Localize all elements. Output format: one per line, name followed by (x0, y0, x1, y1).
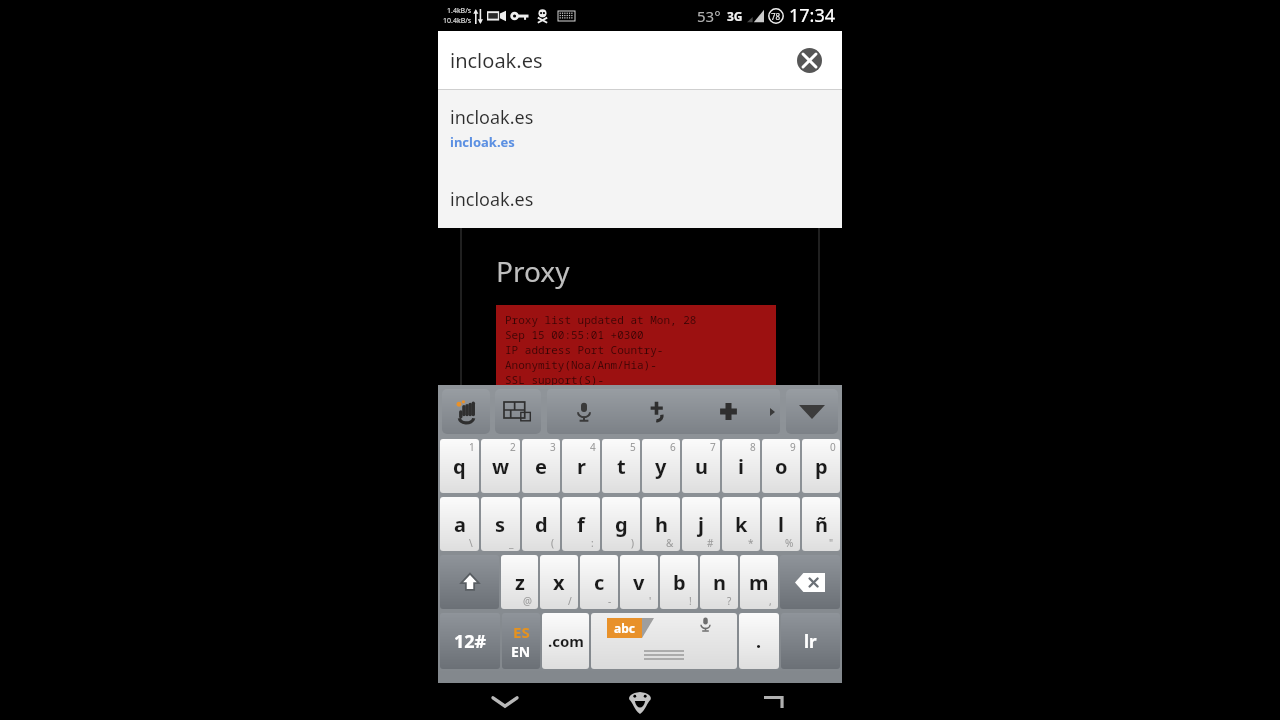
button[interactable]: ñ (802, 497, 840, 551)
button[interactable]: More options (764, 389, 780, 434)
staticText: 10.4kB/s (443, 16, 472, 26)
button[interactable]: d (522, 497, 560, 551)
button[interactable]: . (739, 613, 779, 669)
staticText: @ (523, 594, 532, 608)
staticText: 6 (670, 440, 676, 454)
button[interactable]: r (562, 439, 600, 493)
staticText: v (633, 569, 645, 596)
staticText: 9 (790, 440, 796, 454)
button[interactable]: Twitter (620, 389, 692, 434)
staticText: 3G (727, 8, 743, 24)
staticText: h (655, 511, 668, 538)
button[interactable]: Home (572, 683, 707, 720)
button[interactable]: incloak.es (438, 90, 842, 157)
staticText: incloak.es (450, 47, 791, 74)
button[interactable]: Back (438, 683, 572, 720)
staticText: _ (509, 536, 514, 550)
button[interactable]: Handwriting input (442, 389, 490, 434)
button[interactable]: l (762, 497, 800, 551)
staticText: m (749, 569, 769, 596)
button[interactable]: u (682, 439, 720, 493)
staticText: u (695, 453, 708, 480)
button[interactable]: h (642, 497, 680, 551)
staticText: - (608, 594, 612, 608)
staticText: 53° (697, 6, 721, 26)
staticText: # (707, 536, 714, 550)
staticText: 2 (510, 440, 516, 454)
staticText: ! (689, 594, 692, 608)
button[interactable]: Keyboard layout (495, 389, 541, 434)
button[interactable]: g (602, 497, 640, 551)
button[interactable]: w (481, 439, 520, 493)
button[interactable]: z (501, 555, 538, 609)
staticText: 5 (630, 440, 636, 454)
button[interactable]: j (682, 497, 720, 551)
staticText: c (594, 569, 605, 596)
staticText: 3 (550, 440, 556, 454)
staticText: 78 (771, 11, 781, 22)
staticText: incloak.es (450, 133, 515, 151)
button[interactable]: o (762, 439, 800, 493)
button[interactable]: q (440, 439, 479, 493)
button[interactable]: Hide keyboard (786, 389, 838, 434)
button[interactable]: c (580, 555, 618, 609)
staticText: IP address Port Country- (505, 342, 664, 357)
button[interactable]: a (440, 497, 479, 551)
staticText: f (577, 511, 585, 538)
button[interactable]: Recent apps (707, 683, 842, 720)
staticText: o (775, 453, 788, 480)
button[interactable]: Shift (440, 555, 499, 609)
staticText: 8 (750, 440, 756, 454)
staticText: d (535, 511, 548, 538)
staticText: 4 (590, 440, 596, 454)
button[interactable]: Backspace (780, 555, 840, 609)
button[interactable]: Clear query (791, 42, 827, 78)
staticText: r (577, 453, 586, 480)
button[interactable]: e (522, 439, 560, 493)
button[interactable]: b (660, 555, 698, 609)
button[interactable]: i (722, 439, 760, 493)
staticText: & (666, 536, 674, 550)
button[interactable]: Space (591, 613, 737, 669)
button[interactable]: 12# (440, 613, 500, 669)
staticText: .com (548, 631, 584, 651)
staticText: * (748, 536, 754, 550)
button[interactable]: f (562, 497, 600, 551)
staticText: ( (551, 536, 554, 550)
button[interactable]: .com (542, 613, 589, 669)
staticText: b (673, 569, 686, 596)
staticText: / (568, 594, 572, 608)
staticText: i (738, 453, 744, 480)
button[interactable]: x (540, 555, 578, 609)
button[interactable]: k (722, 497, 760, 551)
staticText: ' (649, 594, 652, 608)
staticText: incloak.es (450, 105, 534, 130)
staticText: ) (631, 536, 634, 550)
staticText: p (815, 453, 828, 480)
staticText: s (495, 511, 506, 538)
button[interactable]: v (620, 555, 658, 609)
staticText: 0 (830, 440, 836, 454)
staticText: ? (727, 594, 732, 608)
button[interactable]: Voice input (547, 389, 620, 434)
staticText: Proxy list updated at Mon, 28 (505, 312, 697, 327)
button[interactable]: Switch language (502, 613, 540, 669)
button[interactable]: incloak.es (438, 179, 842, 219)
staticText: 1.4kB/s (447, 6, 472, 16)
staticText: 12# (454, 629, 487, 654)
button[interactable]: m (740, 555, 778, 609)
staticText: t (617, 453, 626, 480)
staticText: EN (511, 642, 531, 661)
staticText: q (453, 453, 466, 480)
staticText: k (735, 511, 748, 538)
button[interactable]: Add shortcut (692, 389, 764, 434)
button[interactable]: t (602, 439, 640, 493)
button[interactable]: s (481, 497, 520, 551)
staticText: : (591, 536, 594, 550)
button[interactable]: n (700, 555, 738, 609)
staticText: Proxy (496, 252, 570, 290)
button[interactable]: p (802, 439, 840, 493)
staticText: SSL support(S)- (505, 372, 604, 387)
button[interactable]: y (642, 439, 680, 493)
button[interactable]: lr (781, 613, 840, 669)
